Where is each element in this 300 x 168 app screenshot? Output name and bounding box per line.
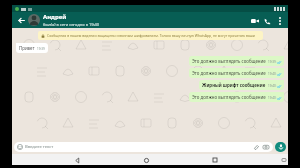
staticText: Жирный шрифт сообщение <box>202 82 266 88</box>
button[interactable]: Привет <box>16 43 48 53</box>
button[interactable]: Back <box>15 14 27 26</box>
staticText: Это должно выглядеть сообщение <box>192 94 266 100</box>
button[interactable]: Send voice message <box>275 142 286 152</box>
staticText: Привет <box>19 45 35 51</box>
staticText: 19:39 <box>268 60 276 64</box>
staticText: Это должно выглядеть сообщение <box>192 58 266 64</box>
button[interactable]: Сообщения в нашем видении защищены сквоз… <box>38 31 263 40</box>
button[interactable]: Profile photo <box>28 14 40 26</box>
button[interactable]: Жирный шрифт сообщение <box>199 80 284 90</box>
button[interactable]: Voice call <box>261 14 274 27</box>
staticText: Сообщения в нашем видении защищены сквоз… <box>47 33 260 38</box>
staticText: Андрей <box>43 13 67 21</box>
button[interactable]: Camera <box>262 143 270 151</box>
button[interactable]: Recent apps <box>210 155 220 165</box>
button[interactable]: Video call <box>248 14 261 27</box>
staticText: 19:39 <box>37 47 45 51</box>
button[interactable]: Введите текст <box>14 142 273 152</box>
button[interactable]: Home <box>141 155 151 165</box>
button[interactable]: Attach <box>252 143 260 151</box>
button[interactable]: Это должно выглядеть сообщение <box>189 68 284 78</box>
button[interactable]: More options <box>274 15 285 26</box>
button[interactable]: Keyboard <box>279 155 288 164</box>
button[interactable]: Это должно выглядеть сообщение <box>189 56 284 66</box>
staticText: 19:40 <box>268 84 276 88</box>
staticText: Это должно выглядеть сообщение <box>192 70 266 76</box>
staticText: был(а) в сети сегодня в 19:40 <box>43 22 100 27</box>
staticText: Введите текст <box>25 144 54 150</box>
button[interactable]: Back <box>72 155 82 165</box>
staticText: 19:40 <box>268 96 276 100</box>
staticText: 19:40 <box>268 72 276 76</box>
button[interactable]: Это должно выглядеть сообщение <box>189 92 284 102</box>
button[interactable]: Андрей <box>43 13 248 27</box>
